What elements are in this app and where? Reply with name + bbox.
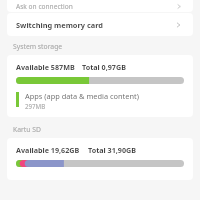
button[interactable]: Switching memory card	[7, 13, 193, 36]
staticText: System storage	[13, 42, 63, 51]
staticText: Ask on connection	[16, 2, 175, 11]
other: Open ask on connection	[175, 2, 184, 11]
staticText: Kartu SD	[13, 125, 41, 134]
staticText: Available 19,62GB	[16, 145, 80, 155]
staticText: Available 587MB	[16, 62, 75, 72]
staticText: Total 0,97GB	[82, 62, 126, 72]
staticText: Apps (app data & media content)	[25, 91, 139, 101]
button[interactable]: Ask on connection	[7, 0, 193, 12]
other: Open switching memory card	[174, 20, 184, 30]
button[interactable]: Available 587MB	[7, 55, 193, 117]
staticText: Total 31,90GB	[88, 145, 137, 155]
staticText: 297MB	[25, 102, 46, 110]
staticText: Switching memory card	[16, 20, 174, 30]
button[interactable]: Available 19,62GB	[7, 138, 193, 180]
